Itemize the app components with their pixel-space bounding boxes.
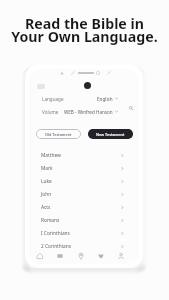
- button[interactable]: Romans: [29, 214, 139, 227]
- staticText: Language: [42, 96, 64, 102]
- staticText: Mark: [41, 165, 53, 172]
- staticText: WEB - Winfred Hanson: [64, 109, 113, 115]
- staticText: Romans: [41, 217, 60, 224]
- button[interactable]: Library: [53, 249, 67, 263]
- button[interactable]: New Testament: [88, 129, 133, 139]
- button[interactable]: 2 Corinthians: [29, 240, 139, 253]
- staticText: I Corinthians: [41, 230, 70, 237]
- staticText: Old Testament: [45, 132, 72, 137]
- button[interactable]: Favorites: [94, 249, 108, 263]
- button[interactable]: Mark: [29, 162, 139, 175]
- staticText: Volume: [42, 109, 59, 115]
- staticText: English: [97, 96, 113, 102]
- button[interactable]: Luke: [29, 175, 139, 188]
- button[interactable]: Volume: [29, 107, 139, 116]
- staticText: New Testament: [96, 132, 125, 137]
- button[interactable]: John: [29, 188, 139, 201]
- button[interactable]: Old Testament: [36, 129, 81, 139]
- staticText: Luke: [41, 178, 52, 185]
- button[interactable]: Matthew: [29, 149, 139, 162]
- staticText: Read the Bible in Your Own Language.: [11, 14, 158, 46]
- button[interactable]: Language: [29, 94, 139, 103]
- staticText: Acts: [41, 204, 51, 211]
- button[interactable]: Profile: [114, 249, 128, 263]
- button[interactable]: Menu: [37, 84, 45, 89]
- staticText: 2 Corinthians: [41, 243, 71, 250]
- staticText: John: [41, 191, 52, 198]
- staticText: Matthew: [41, 152, 61, 159]
- button[interactable]: Discover: [74, 249, 88, 263]
- button[interactable]: Acts: [29, 201, 139, 214]
- button[interactable]: I Corinthians: [29, 227, 139, 240]
- button[interactable]: Home: [33, 249, 47, 263]
- button[interactable]: Search: [128, 105, 134, 111]
